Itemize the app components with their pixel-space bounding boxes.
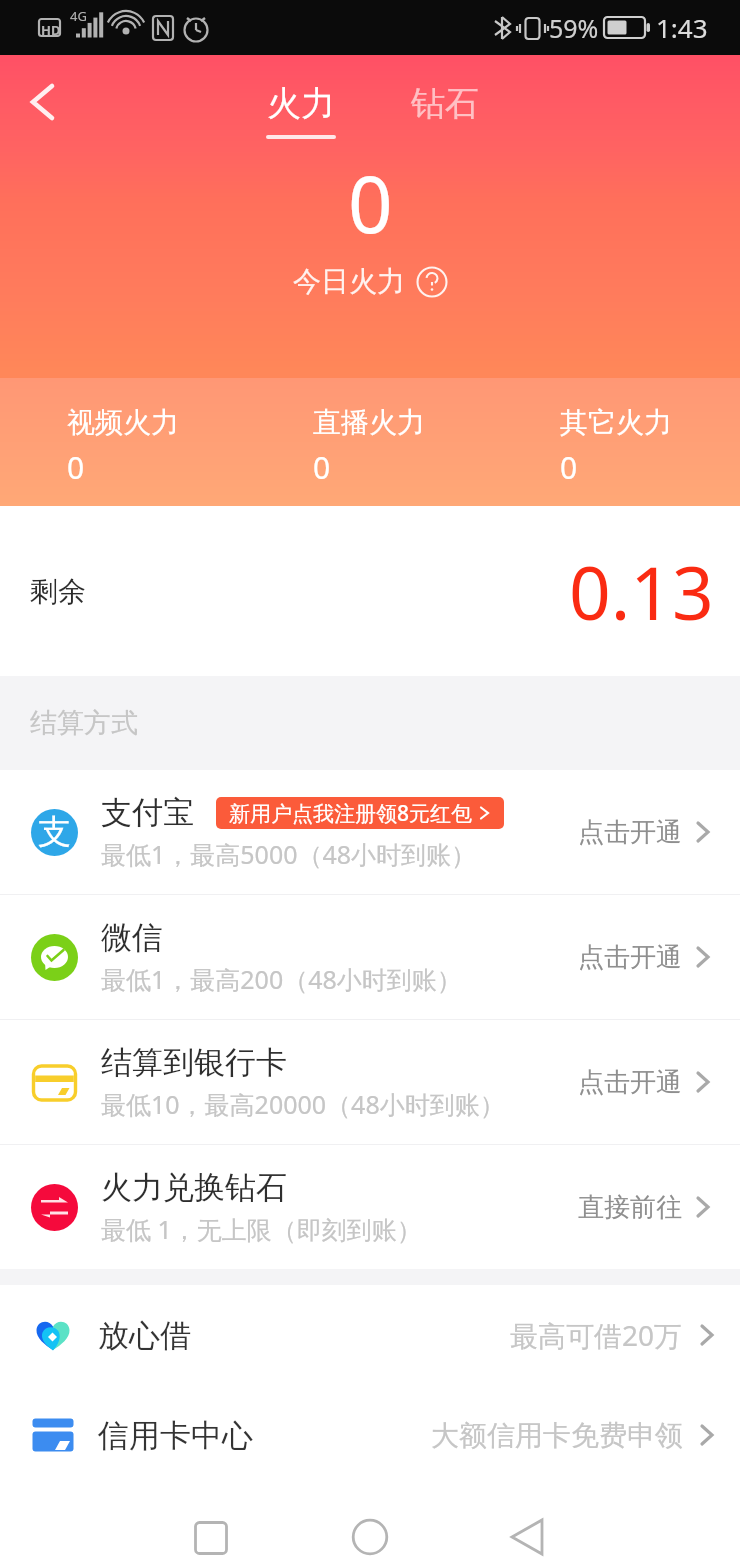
staticText: 支 [38,811,71,853]
staticText: 0 [313,447,331,488]
button[interactable]: Back [488,1500,568,1559]
staticText: 最低 1，无上限（即刻到账） [101,1212,422,1246]
staticText: 结算到银行卡 [101,1043,287,1082]
staticText: 点击开通 [578,816,682,849]
staticText: 火力兑换钻石 [101,1168,287,1207]
staticText: 结算方式 [30,706,138,740]
button[interactable]: 剩余 [0,506,740,676]
staticText: 最低1，最高5000（48小时到账） [101,837,477,871]
button[interactable]: 信用卡中心 [0,1385,740,1485]
staticText: 视频火力 [67,405,179,440]
staticText: 信用卡中心 [98,1416,253,1455]
button[interactable]: 微信 [0,895,740,1019]
staticText: 支付宝 [101,793,194,832]
button[interactable]: 放心借 [0,1285,740,1385]
button[interactable]: Home [330,1500,410,1559]
staticText: 4G [70,7,87,25]
staticText: 点击开通 [578,1066,682,1099]
staticText: 直接前往 [578,1191,682,1224]
button[interactable]: 新用户点我注册领8元红包 [216,797,504,829]
button[interactable]: 钻石 [411,82,479,125]
staticText: HD [41,21,61,39]
staticText: 最高可借20万 [510,1316,683,1354]
button[interactable]: 结算到银行卡 [0,1020,740,1144]
staticText: 今日火力 [293,264,405,299]
button[interactable]: Help [416,266,448,298]
staticText: 59% [549,11,599,45]
staticText: 0.13 [569,542,714,641]
staticText: 直播火力 [313,405,425,440]
staticText: 放心借 [98,1316,191,1355]
button[interactable]: 火力兑换钻石 [0,1145,740,1269]
staticText: 微信 [101,918,163,957]
staticText: 新用户点我注册领8元红包 [229,799,473,828]
staticText: 最低10，最高20000（48小时到账） [101,1087,505,1121]
staticText: 钻石 [411,82,479,125]
staticText: 其它火力 [560,405,672,440]
staticText: 火力 [267,82,335,125]
staticText: 0 [67,447,85,488]
staticText: 剩余 [30,574,86,609]
staticText: 点击开通 [578,941,682,974]
staticText: 0 [348,150,393,256]
staticText: 大额信用卡免费申领 [431,1418,683,1453]
button[interactable]: 支 [0,770,740,894]
button[interactable]: 火力 [266,82,336,139]
staticText: 0 [560,447,578,488]
button[interactable]: Back [4,55,80,131]
button[interactable]: Recent apps [171,1501,251,1559]
staticText: 最低1，最高200（48小时到账） [101,962,462,996]
staticText: 1:43 [656,10,708,45]
